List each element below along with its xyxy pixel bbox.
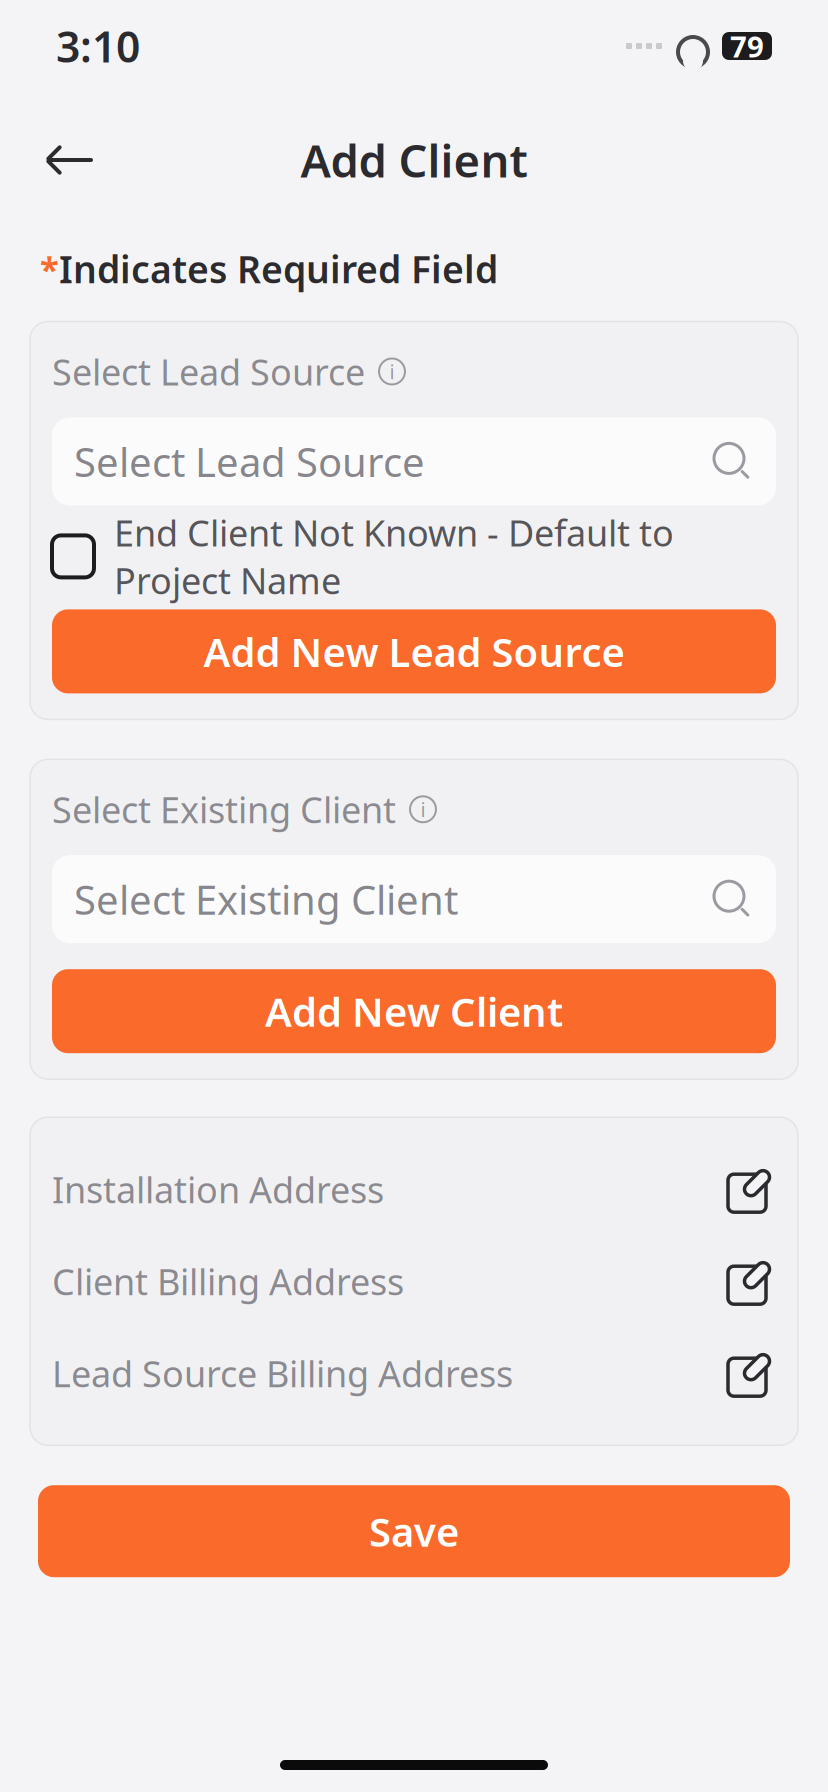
- staticText: Add New Client: [265, 985, 563, 1038]
- staticText: Select Existing Client: [52, 785, 396, 833]
- staticText: i: [420, 796, 425, 823]
- staticText: Select Lead Source: [52, 348, 365, 395]
- staticText: Client Billing Address: [52, 1257, 404, 1305]
- staticText: Add New Lead Source: [203, 625, 624, 678]
- staticText: Select Lead Source: [74, 435, 425, 488]
- button[interactable]: Edit Lead Source Billing Address: [726, 1349, 776, 1397]
- staticText: Installation Address: [52, 1165, 384, 1213]
- staticText: Add Client: [300, 130, 527, 190]
- staticText: 79: [730, 26, 764, 65]
- staticText: Indicates Required Field: [59, 244, 498, 294]
- button[interactable]: Add New Client: [52, 969, 776, 1053]
- staticText: 3:10: [56, 18, 140, 74]
- button[interactable]: Select Existing Client: [52, 855, 776, 943]
- button[interactable]: Save: [38, 1485, 790, 1577]
- staticText: *: [40, 246, 59, 292]
- staticText: Save: [369, 1505, 459, 1558]
- staticText: End Client Not Known - Default to Projec…: [114, 509, 674, 604]
- staticText: Lead Source Billing Address: [52, 1349, 513, 1397]
- button[interactable]: Edit Client Billing Address: [726, 1257, 776, 1305]
- button[interactable]: Add New Lead Source: [52, 609, 776, 693]
- staticText: Select Existing Client: [74, 873, 458, 926]
- button[interactable]: Select Lead Source: [52, 417, 776, 505]
- button[interactable]: End Client Not Known - Default to Projec…: [52, 529, 776, 583]
- button[interactable]: Edit Installation Address: [726, 1165, 776, 1213]
- button[interactable]: More info about Select Existing Client: [410, 796, 436, 822]
- button[interactable]: Back: [38, 128, 102, 192]
- button[interactable]: More info about Select Lead Source: [379, 358, 405, 384]
- staticText: i: [389, 358, 394, 385]
